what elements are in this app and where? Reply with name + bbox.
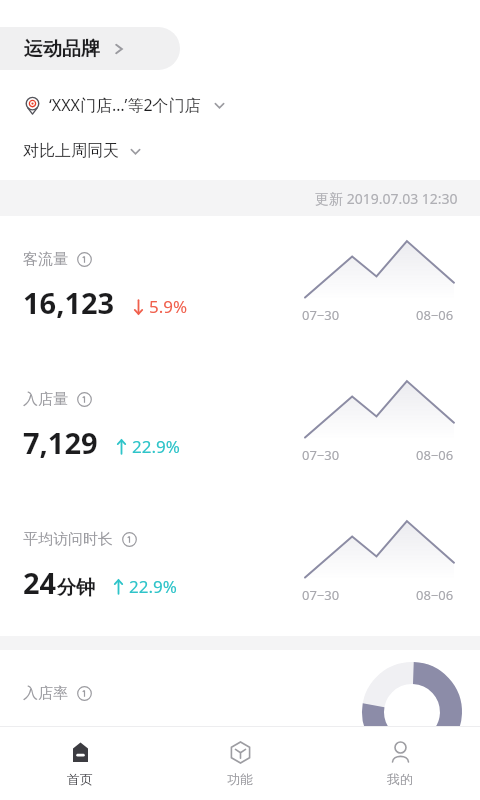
- staticText: 对比上周同天: [23, 141, 119, 161]
- staticText: 7,129: [23, 423, 98, 462]
- button[interactable]: 客流量: [0, 216, 480, 356]
- button[interactable]: Functions: [160, 727, 320, 800]
- staticText: ‘XXX门店…’等2个门店: [49, 94, 201, 116]
- staticText: 16,123: [23, 283, 115, 322]
- staticText: 22.9%: [132, 435, 180, 458]
- staticText: 5.9%: [149, 295, 188, 318]
- staticText: 24: [23, 563, 57, 602]
- staticText: 分钟: [57, 576, 95, 600]
- button[interactable]: Mine: [320, 727, 480, 800]
- staticText: 功能: [227, 771, 253, 787]
- staticText: 07−30: [302, 306, 340, 324]
- staticText: 首页: [67, 771, 93, 787]
- staticText: 22.9%: [129, 575, 177, 598]
- button[interactable]: 对比上周同天: [0, 136, 480, 166]
- button[interactable]: Home: [0, 727, 160, 800]
- staticText: 08−06: [416, 586, 454, 604]
- button[interactable]: 平均访问时长: [0, 496, 480, 636]
- button[interactable]: 运动品牌: [0, 27, 180, 70]
- staticText: 08−06: [416, 306, 454, 324]
- staticText: 08−06: [416, 446, 454, 464]
- staticText: 入店量: [23, 390, 68, 409]
- staticText: 我的: [387, 771, 413, 787]
- button[interactable]: ‘XXX门店…’等2个门店: [0, 88, 480, 122]
- staticText: 入店率: [23, 684, 68, 703]
- staticText: 07−30: [302, 446, 340, 464]
- staticText: 07−30: [302, 586, 340, 604]
- staticText: 运动品牌: [24, 37, 100, 61]
- staticText: 客流量: [23, 250, 68, 269]
- staticText: 平均访问时长: [23, 530, 113, 549]
- button[interactable]: 入店率: [0, 650, 480, 800]
- button[interactable]: 入店量: [0, 356, 480, 496]
- staticText: 更新 2019.07.03 12:30: [315, 189, 458, 208]
